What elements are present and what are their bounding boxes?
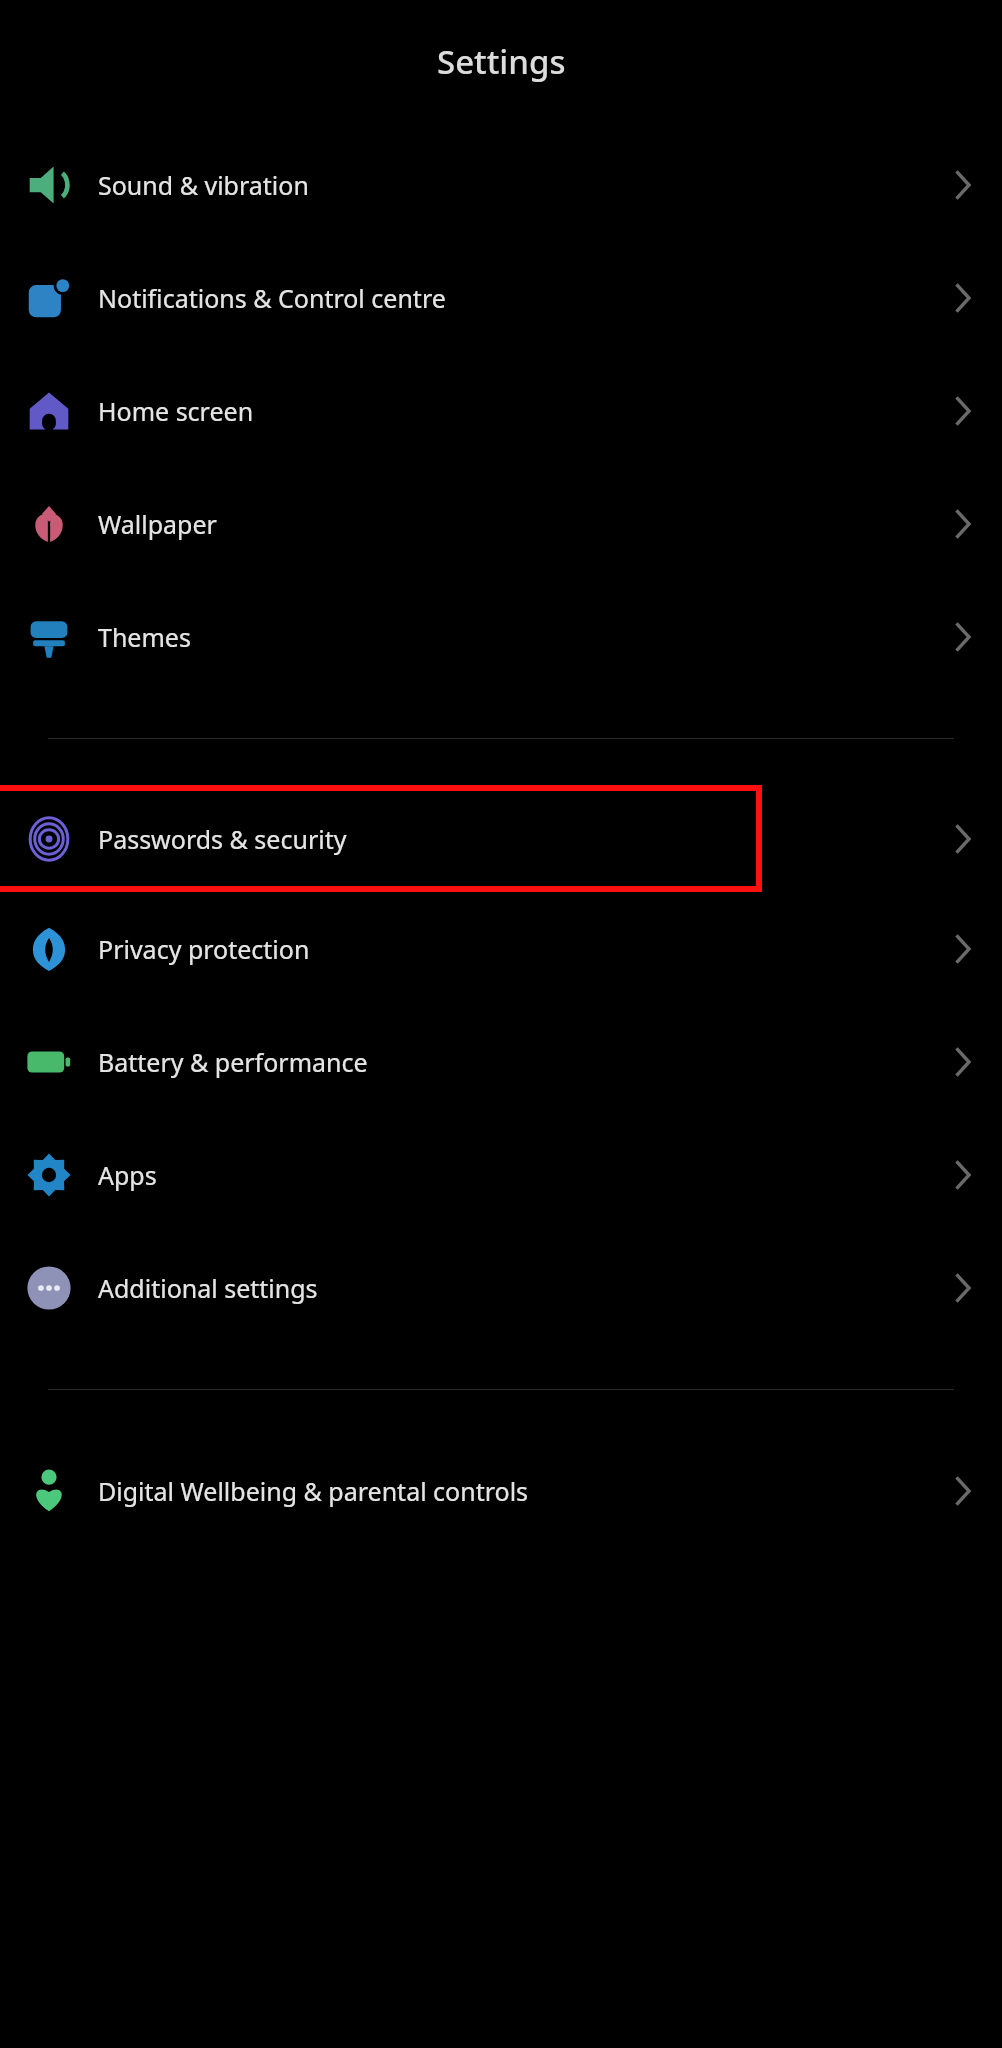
other: Open (951, 1044, 973, 1080)
other: Open (951, 280, 973, 316)
other: Open (951, 393, 973, 429)
staticText: Settings (437, 39, 566, 84)
button[interactable]: Privacy protection (0, 892, 1002, 1005)
other: Open (951, 821, 973, 857)
button[interactable]: Wallpaper (0, 467, 1002, 580)
other: Open (951, 1270, 973, 1306)
other: Open (951, 1157, 973, 1193)
other: Open (951, 167, 973, 203)
other: Open (951, 506, 973, 542)
staticText: Wallpaper (98, 507, 922, 541)
staticText: Passwords & security (98, 822, 922, 856)
button[interactable]: Apps (0, 1118, 1002, 1231)
button[interactable]: Themes (0, 580, 1002, 693)
staticText: Battery & performance (98, 1045, 922, 1079)
button[interactable]: Home screen (0, 354, 1002, 467)
staticText: Themes (98, 620, 922, 654)
button[interactable]: Notifications & Control centre (0, 241, 1002, 354)
button[interactable]: Additional settings (0, 1231, 1002, 1344)
staticText: Apps (98, 1158, 922, 1192)
staticText: Privacy protection (98, 932, 922, 966)
staticText: Additional settings (98, 1271, 922, 1305)
button[interactable]: Sound & vibration (0, 128, 1002, 241)
staticText: Notifications & Control centre (98, 281, 922, 315)
other: Open (951, 619, 973, 655)
staticText: Home screen (98, 394, 922, 428)
staticText: Sound & vibration (98, 168, 922, 202)
button[interactable]: Passwords & security (0, 785, 1002, 892)
button[interactable]: Digital Wellbeing & parental controls (0, 1434, 1002, 1547)
other: Open (951, 931, 973, 967)
staticText: Digital Wellbeing & parental controls (98, 1474, 922, 1508)
other: Open (951, 1473, 973, 1509)
button[interactable]: Battery & performance (0, 1005, 1002, 1118)
